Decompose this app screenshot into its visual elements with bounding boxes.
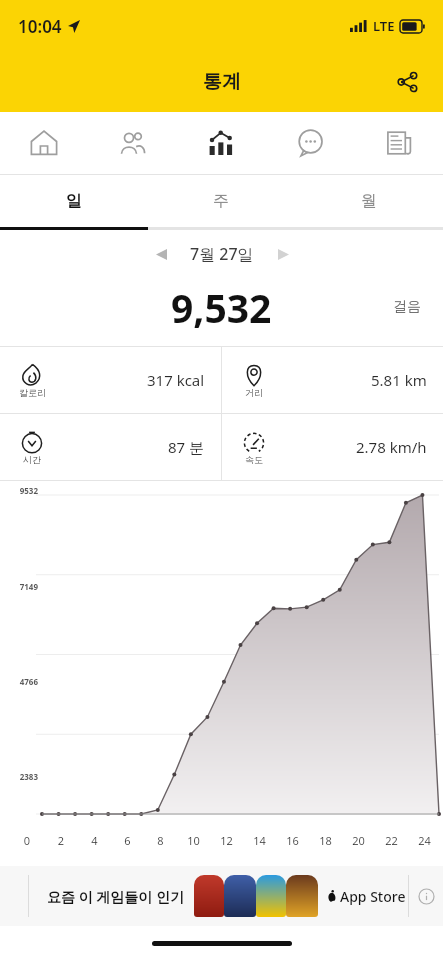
- button[interactable]: 시간: [0, 414, 221, 480]
- staticText: 7149: [0, 581, 38, 592]
- staticText: 22: [375, 833, 408, 848]
- staticText: 2: [44, 833, 78, 848]
- staticText: 18: [309, 833, 342, 848]
- button[interactable]: 주: [147, 175, 295, 227]
- staticText: 2.78 km/h: [356, 437, 427, 457]
- staticText: 8: [144, 833, 177, 848]
- staticText: 9532: [0, 485, 38, 496]
- button[interactable]: Ad info: [409, 866, 443, 926]
- button[interactable]: 요즘 이 게임들이 인기: [0, 866, 443, 926]
- button[interactable]: Previous day: [142, 235, 180, 273]
- staticText: 걸음: [393, 298, 421, 316]
- staticText: 14: [243, 833, 276, 848]
- staticText: 주: [213, 191, 229, 211]
- button[interactable]: 일: [0, 175, 147, 227]
- button[interactable]: Share: [385, 60, 429, 104]
- button[interactable]: Next day: [264, 235, 302, 273]
- button[interactable]: Board: [354, 112, 443, 174]
- staticText: 10: [177, 833, 210, 848]
- staticText: 317 kcal: [147, 370, 205, 390]
- staticText: 일: [66, 191, 82, 211]
- staticText: 속도: [245, 454, 263, 465]
- staticText: 20: [342, 833, 375, 848]
- staticText: 6: [111, 833, 144, 848]
- staticText: 87 분: [168, 437, 205, 457]
- button[interactable]: Statistics: [176, 112, 265, 174]
- staticText: 16: [276, 833, 309, 848]
- staticText: 5.81 km: [371, 370, 427, 390]
- staticText: 칼로리: [19, 387, 46, 398]
- staticText: LTE: [373, 17, 395, 35]
- button[interactable]: 월: [295, 175, 443, 227]
- staticText: 4766: [0, 676, 38, 687]
- staticText: App Store: [340, 887, 406, 906]
- staticText: 7월 27일: [190, 243, 254, 265]
- staticText: 거리: [245, 387, 263, 398]
- button[interactable]: 거리: [222, 347, 443, 413]
- staticText: 0: [10, 833, 44, 848]
- staticText: 요즘 이 게임들이 인기: [47, 887, 184, 906]
- button[interactable]: 칼로리: [0, 347, 221, 413]
- staticText: 12: [210, 833, 243, 848]
- staticText: 4: [78, 833, 111, 848]
- button[interactable]: Chat: [265, 112, 354, 174]
- staticText: 시간: [23, 454, 41, 465]
- staticText: 2383: [0, 771, 38, 782]
- staticText: 통계: [203, 70, 241, 94]
- staticText: 24: [408, 833, 441, 848]
- staticText: 월: [361, 191, 377, 211]
- button[interactable]: Friends: [88, 112, 176, 174]
- staticText: 9,532: [171, 281, 272, 334]
- staticText: 10:04: [18, 15, 62, 38]
- button[interactable]: 속도: [222, 414, 443, 480]
- button[interactable]: Home: [0, 112, 88, 174]
